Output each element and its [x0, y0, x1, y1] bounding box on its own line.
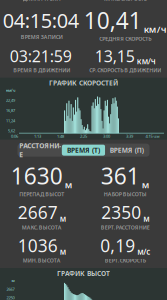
staticText: 1036	[18, 234, 58, 257]
staticText: 361	[101, 161, 140, 191]
staticText: м/с	[137, 246, 150, 257]
staticText: ВРЕМЯ (П)	[110, 146, 144, 155]
staticText: 2250	[6, 295, 14, 300]
staticText: ВЕРТ. СКОРОСТЬ	[105, 257, 146, 264]
staticText: ВРЕМЯ (Т)	[67, 146, 100, 155]
staticText: м	[11, 278, 14, 283]
staticText: 11,24	[6, 118, 15, 123]
staticText: 3:00	[103, 133, 110, 139]
button[interactable]: ВРЕМЯ (П)	[105, 145, 148, 156]
staticText: м	[65, 178, 73, 191]
staticText: ПЕРЕПАД ВЫСОТ	[19, 191, 64, 198]
staticText: 03:21:59	[10, 45, 72, 66]
staticText: 2667	[6, 286, 14, 292]
staticText: 13,15	[95, 45, 135, 66]
staticText: 2:25	[80, 133, 87, 139]
staticText: ВРЕМЯ В ДВИЖЕНИИ	[13, 67, 70, 74]
staticText: км/ч	[137, 56, 156, 67]
staticText: км/ч	[144, 23, 167, 35]
staticText: 0:06	[11, 133, 18, 139]
staticText: 22,49	[6, 98, 15, 103]
staticText: МАКС. ВЫСОТА	[22, 224, 62, 231]
staticText: м	[60, 246, 66, 257]
staticText: РАССТОЯНИЕ	[19, 141, 61, 159]
staticText: м	[143, 213, 149, 224]
staticText: ГРАФИК ВЫСОТ	[57, 269, 110, 278]
staticText: 2350	[101, 201, 141, 224]
staticText: 1:48	[57, 133, 64, 139]
staticText: ДЛИНА ТРЕКА	[23, 0, 61, 2]
staticText: 3:39	[126, 133, 133, 139]
staticText: ВЕРТ. РАССТОЯНИЕ	[101, 224, 150, 231]
staticText: МАКС. СКОРОСТЬ	[104, 0, 147, 2]
staticText: МИН. ВЫСОТА	[23, 257, 61, 264]
staticText: 4:15 ч:м	[145, 133, 159, 139]
staticText: СРЕДНЯЯ СКОРОСТЬ	[99, 35, 151, 42]
staticText: м	[60, 213, 66, 224]
button[interactable]: РАССТОЯНИЕ	[18, 145, 62, 156]
staticText: 1:13	[34, 133, 41, 139]
staticText: 0,19	[100, 234, 135, 257]
button[interactable]: ВРЕМЯ (Т)	[62, 145, 105, 156]
staticText: м	[142, 178, 150, 191]
staticText: 2667	[18, 201, 58, 224]
staticText: СР. СКОРОСТЬ В ДВИЖЕНИИ	[89, 67, 161, 74]
staticText: км/ч	[6, 87, 15, 93]
staticText: ВРЕМЯ ЗАПИСИ	[21, 33, 63, 41]
staticText: 1630	[11, 161, 63, 191]
staticText: НАБОР ВЫСОТЫ	[104, 191, 147, 198]
staticText: 04:15:04	[3, 7, 79, 33]
staticText: 16,87	[6, 108, 15, 113]
staticText: 10,41	[84, 5, 142, 35]
staticText: 5,62	[8, 128, 15, 133]
staticText: ГРАФИК СКОРОСТЕЙ	[49, 79, 118, 87]
